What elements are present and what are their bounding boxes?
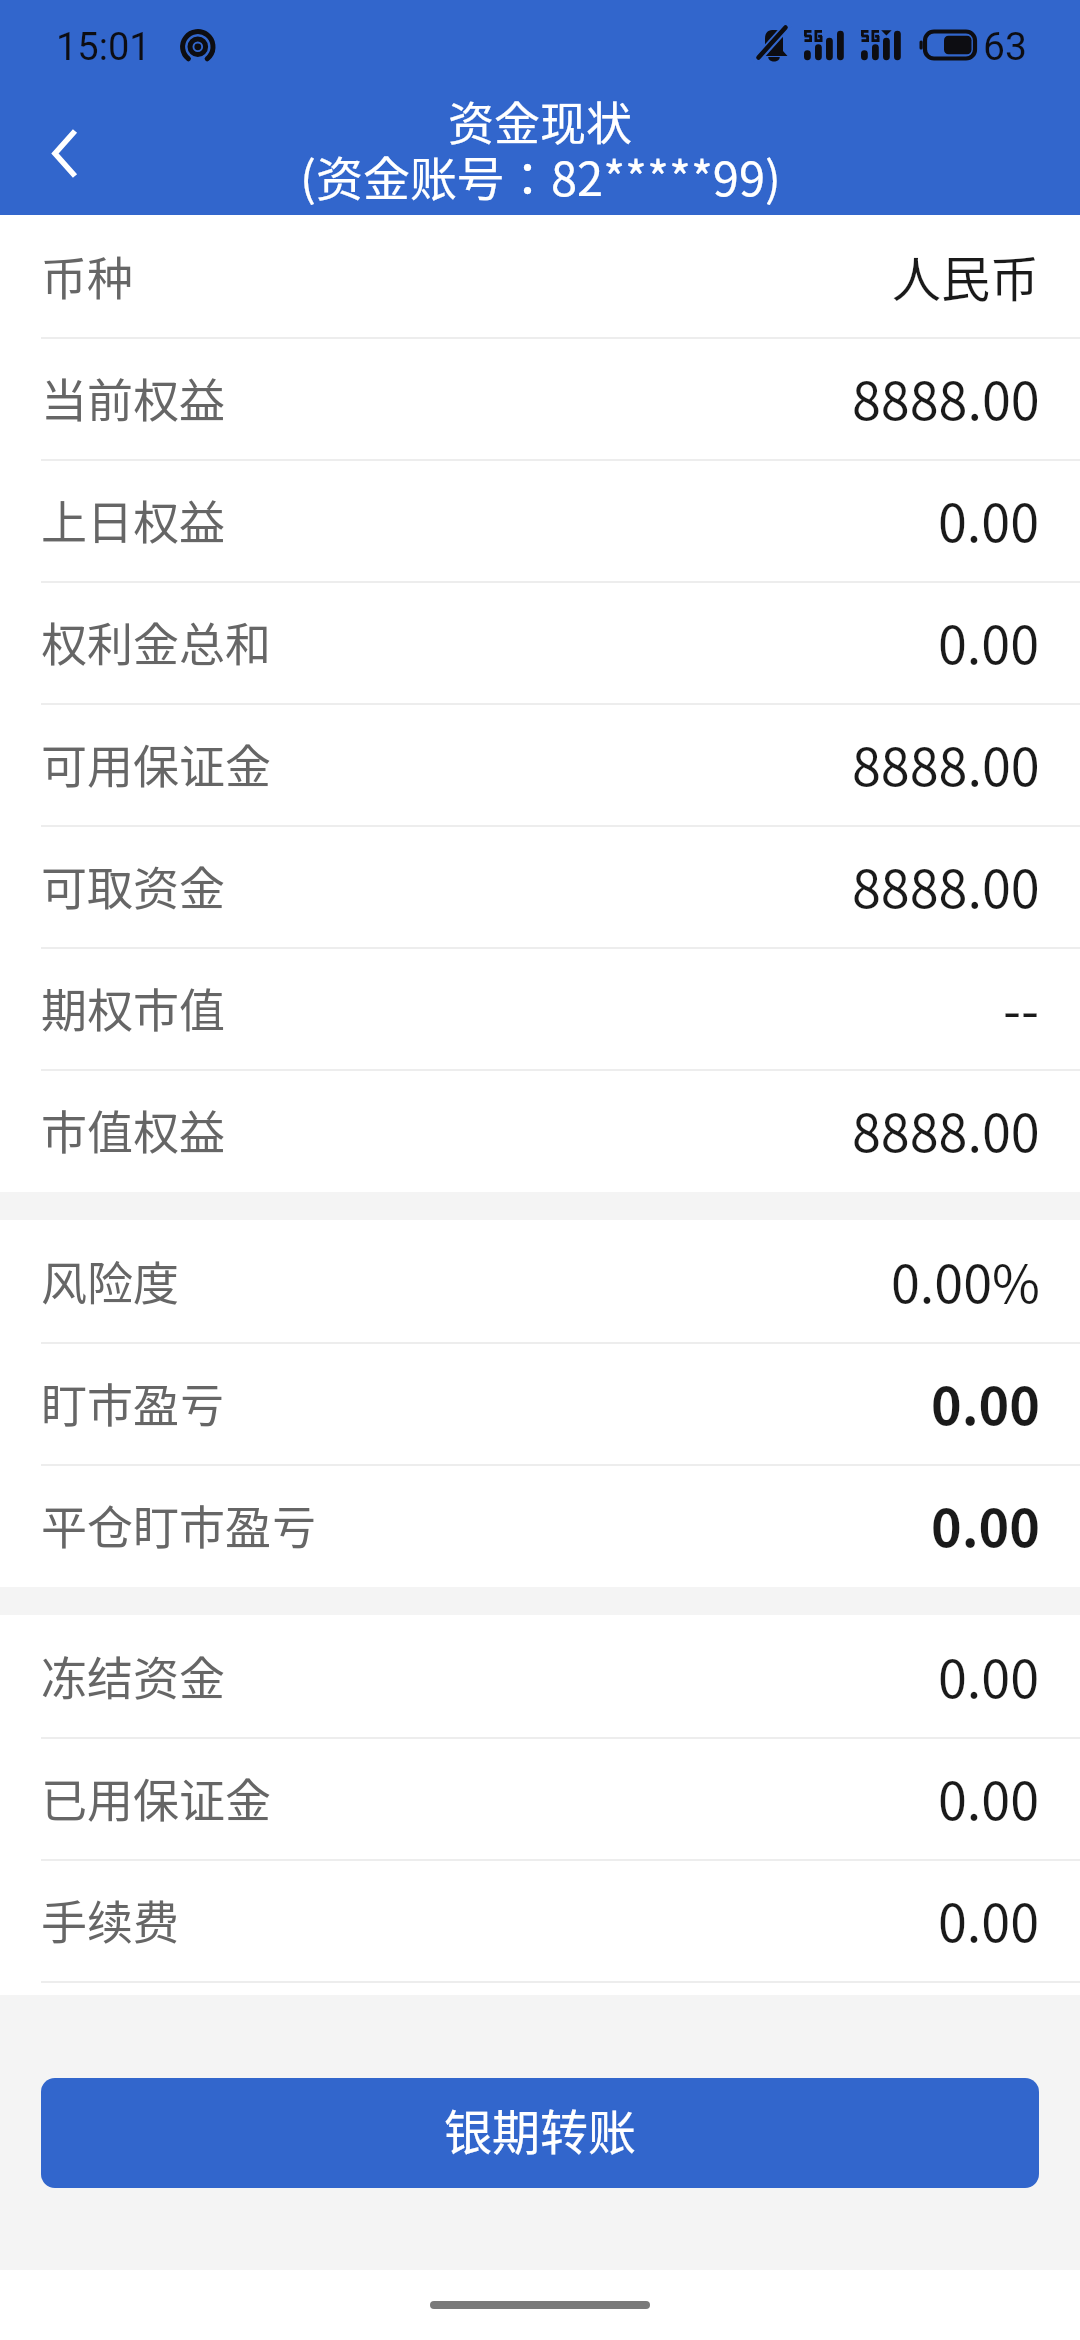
button[interactable]: Back — [0, 88, 128, 215]
staticText: 银期转账 — [444, 2094, 637, 2164]
staticText: 已用保证金 — [41, 1764, 271, 1831]
staticText: 风险度 — [41, 1247, 179, 1314]
staticText: 0.00 — [938, 604, 1040, 679]
staticText: 币种 — [41, 242, 133, 309]
staticText: 8888.00 — [852, 848, 1040, 923]
staticText: 资金现状 — [448, 87, 632, 154]
staticText: 平仓盯市盈亏 — [41, 1491, 317, 1558]
staticText: 可用保证金 — [41, 730, 271, 797]
staticText: 可取资金 — [41, 852, 225, 919]
button[interactable]: 盯市盈亏 — [0, 1342, 1080, 1464]
button[interactable]: 市值权益 — [0, 1069, 1080, 1191]
button[interactable]: 银期转账 — [41, 2078, 1039, 2188]
staticText: 8888.00 — [852, 1092, 1040, 1167]
button[interactable]: 风险度 — [0, 1220, 1080, 1342]
staticText: 0.00 — [938, 1760, 1040, 1835]
staticText: 0.00 — [938, 1638, 1040, 1713]
button[interactable]: 当前权益 — [0, 337, 1080, 459]
staticText: 权利金总和 — [41, 608, 271, 675]
staticText: 手续费 — [41, 1886, 179, 1953]
staticText: 市值权益 — [41, 1096, 225, 1163]
staticText: (资金账号：82*****99) — [300, 141, 781, 209]
button[interactable]: 已用保证金 — [0, 1737, 1080, 1859]
staticText: 8888.00 — [852, 726, 1040, 801]
staticText: 盯市盈亏 — [41, 1369, 225, 1436]
staticText: 63 — [983, 24, 1027, 70]
button[interactable]: 手续费 — [0, 1859, 1080, 1981]
staticText: 0.00 — [938, 482, 1040, 557]
staticText: 当前权益 — [41, 364, 225, 431]
staticText: 0.00 — [931, 1487, 1040, 1562]
staticText: 上日权益 — [41, 486, 225, 553]
button[interactable]: 币种 — [0, 215, 1080, 337]
staticText: 0.00 — [931, 1365, 1040, 1440]
staticText: 15:01 — [56, 25, 151, 70]
button[interactable]: 可取资金 — [0, 825, 1080, 947]
staticText: 0.00% — [891, 1243, 1040, 1318]
button[interactable]: 可用保证金 — [0, 703, 1080, 825]
button[interactable]: 上日权益 — [0, 459, 1080, 581]
button[interactable]: 冻结资金 — [0, 1615, 1080, 1737]
button[interactable]: 期权市值 — [0, 947, 1080, 1069]
staticText: 人民币 — [892, 240, 1040, 311]
staticText: -- — [1003, 970, 1040, 1045]
button[interactable]: 平仓盯市盈亏 — [0, 1464, 1080, 1586]
staticText: 冻结资金 — [41, 1642, 225, 1709]
button[interactable]: 权利金总和 — [0, 581, 1080, 703]
staticText: 期权市值 — [41, 974, 225, 1041]
staticText: 0.00 — [938, 1882, 1040, 1957]
staticText: 8888.00 — [852, 360, 1040, 435]
